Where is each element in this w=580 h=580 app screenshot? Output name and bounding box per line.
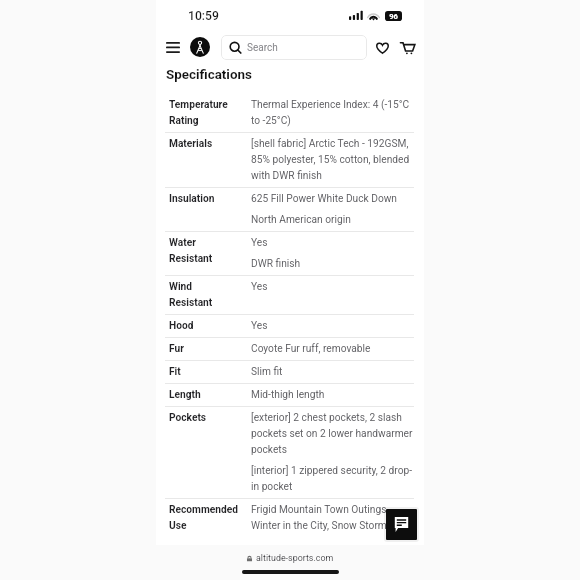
staticText: Yes (251, 277, 268, 293)
staticText: Recommended Use (169, 500, 238, 531)
staticText: Slim fit (251, 362, 283, 378)
staticText: Length (169, 385, 238, 401)
staticText: Search (247, 42, 278, 54)
button[interactable]: Wind Resistant (156, 276, 424, 314)
staticText: Yes (251, 233, 268, 249)
button[interactable]: Water Resistant (156, 232, 424, 275)
staticText: Specifications (166, 67, 252, 83)
button[interactable]: Search (221, 35, 367, 60)
button[interactable]: Wishlist (374, 39, 391, 56)
staticText: altitude-sports.com (256, 553, 334, 563)
button[interactable]: Recommended Use (156, 499, 424, 545)
button[interactable]: Hood (156, 315, 424, 337)
staticText: Insulation (169, 189, 238, 205)
staticText: Thermal Experience Index: 4 (-15°C to -2… (251, 95, 410, 127)
button[interactable]: Temperature Rating (156, 94, 424, 132)
button[interactable]: Pockets (156, 407, 424, 498)
button[interactable]: Materials (156, 133, 424, 187)
staticText: [exterior] 2 chest pockets, 2 slash pock… (251, 408, 413, 456)
button[interactable]: Cart (399, 39, 416, 56)
staticText: 96 (389, 12, 398, 21)
button[interactable]: Fit (156, 361, 424, 383)
staticText: DWR finish (251, 254, 301, 270)
button[interactable]: Chat (386, 509, 417, 540)
staticText: Yes (251, 316, 268, 332)
staticText: Fur (169, 339, 238, 355)
staticText: 10:59 (188, 9, 219, 23)
staticText: 625 Fill Power White Duck Down (251, 189, 397, 205)
staticText: Materials (169, 134, 238, 150)
staticText: Wind Resistant (169, 277, 238, 309)
staticText: Coyote Fur ruff, removable (251, 339, 371, 355)
button[interactable]: Length (156, 384, 424, 406)
button[interactable]: Insulation (156, 188, 424, 231)
staticText: Pockets (169, 408, 238, 424)
staticText: Hood (169, 316, 238, 332)
button[interactable]: Menu (162, 35, 183, 59)
staticText: Water Resistant (169, 233, 238, 265)
staticText: Fit (169, 362, 238, 378)
staticText: Frigid Mountain Town Outings, Winter in … (251, 500, 389, 531)
button[interactable]: Site address altitude-sports.com (246, 553, 334, 563)
staticText: [shell fabric] Arctic Tech - 192GSM, 85%… (251, 134, 410, 182)
staticText: [interior] 1 zippered security, 2 drop- … (251, 461, 413, 493)
button[interactable]: Altitude Sports home (190, 37, 210, 57)
button[interactable]: Fur (156, 338, 424, 360)
staticText: North American origin (251, 210, 351, 226)
staticText: Temperature Rating (169, 95, 238, 127)
staticText: Mid-thigh length (251, 385, 325, 401)
